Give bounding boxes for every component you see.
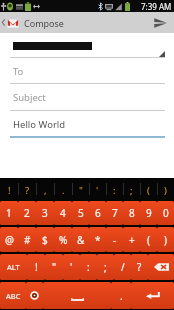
staticText: 2 <box>24 206 30 220</box>
button[interactable]: ! <box>27 254 45 280</box>
staticText: " <box>79 184 83 197</box>
other: Space <box>71 297 84 301</box>
button[interactable]: 0 <box>157 201 174 225</box>
staticText: 1 <box>6 206 12 220</box>
staticText: ? <box>137 260 142 274</box>
staticText: ? <box>25 184 30 197</box>
button[interactable]: - <box>106 227 123 252</box>
staticText: ( <box>147 233 150 247</box>
staticText: $ <box>42 233 48 247</box>
staticText: @ <box>5 233 14 247</box>
staticText: Hello World <box>13 118 66 131</box>
staticText: Compose <box>24 17 64 29</box>
button[interactable]: Hello World <box>0 111 174 138</box>
staticText: . <box>120 289 123 303</box>
staticText: ; <box>104 260 107 274</box>
staticText: 0 <box>163 206 169 220</box>
staticText: ! <box>8 184 11 197</box>
other: Input method <box>31 292 38 299</box>
staticText: * <box>95 233 101 247</box>
button[interactable]: + <box>123 227 140 252</box>
button[interactable]: Enter <box>131 282 174 309</box>
button[interactable]: 6 <box>89 201 106 225</box>
button[interactable]: 7 <box>106 201 123 225</box>
staticText: ABC <box>6 291 21 301</box>
staticText: ) <box>164 184 167 197</box>
staticText: " <box>52 260 57 274</box>
button[interactable]: . <box>111 282 131 309</box>
button[interactable]: 4 <box>54 201 72 225</box>
button[interactable]: ; <box>97 254 114 280</box>
button[interactable]: Space <box>43 282 111 309</box>
staticText: % <box>59 233 68 247</box>
button[interactable]: Send <box>146 12 174 33</box>
button[interactable]: @ <box>0 227 18 252</box>
button[interactable]: ' <box>63 254 80 280</box>
staticText: & <box>77 233 85 247</box>
button[interactable]: 2 <box>18 201 36 225</box>
staticText: 9 <box>146 206 152 220</box>
button[interactable]: Input method <box>26 282 43 309</box>
button[interactable]: % <box>54 227 72 252</box>
other: Backspace <box>154 263 169 271</box>
staticText: - <box>113 233 117 247</box>
button[interactable]: 3 <box>36 201 54 225</box>
staticText: ( <box>147 184 150 197</box>
button[interactable]: Compose <box>0 12 64 33</box>
button[interactable]: 1 <box>0 201 18 225</box>
staticText: , <box>44 184 47 197</box>
staticText: 7:39 AM <box>141 1 172 12</box>
staticText: / <box>121 260 125 274</box>
button[interactable]: & <box>72 227 89 252</box>
button[interactable]: ? <box>131 254 148 280</box>
staticText: : <box>87 260 90 274</box>
button[interactable]: ( <box>140 227 157 252</box>
button[interactable] <box>0 33 174 58</box>
staticText: ! <box>35 260 38 274</box>
staticText: ) <box>164 233 167 247</box>
staticText: ALT <box>7 262 20 272</box>
button[interactable]: ABC <box>0 282 26 309</box>
button[interactable]: ALT <box>0 254 27 280</box>
staticText: ' <box>70 260 73 274</box>
button[interactable]: / <box>114 254 131 280</box>
button[interactable]: * <box>89 227 106 252</box>
button[interactable]: 9 <box>140 201 157 225</box>
staticText: ' <box>96 184 99 197</box>
button[interactable]: 8 <box>123 201 140 225</box>
button[interactable]: ) <box>157 227 174 252</box>
other: Enter <box>145 291 160 300</box>
staticText: 8 <box>129 206 135 220</box>
button[interactable]: 5 <box>72 201 89 225</box>
staticText: + <box>129 233 135 247</box>
button[interactable]: " <box>45 254 63 280</box>
staticText: 5 <box>78 206 84 220</box>
staticText: 7 <box>112 206 118 220</box>
staticText: 4 <box>60 206 66 220</box>
staticText: 6 <box>95 206 101 220</box>
button[interactable]: To <box>0 58 174 84</box>
button[interactable]: $ <box>36 227 54 252</box>
staticText: Subject <box>13 91 46 104</box>
button[interactable]: : <box>80 254 97 280</box>
button[interactable]: Subject <box>0 84 174 111</box>
staticText: : <box>113 184 116 197</box>
staticText: # <box>24 233 31 247</box>
button[interactable]: Backspace <box>148 254 174 280</box>
button[interactable]: # <box>18 227 36 252</box>
staticText: ; <box>130 184 133 197</box>
staticText: To <box>13 65 24 78</box>
staticText: . <box>62 184 65 197</box>
staticText: 3 <box>42 206 48 220</box>
